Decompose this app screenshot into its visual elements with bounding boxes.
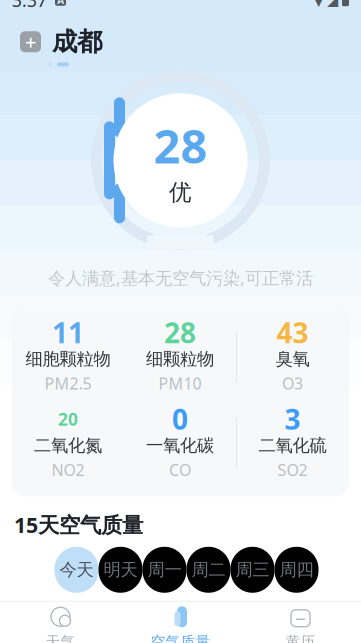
- staticText: 28: [153, 114, 207, 176]
- staticText: 成都: [52, 26, 102, 57]
- button[interactable]: 空气质量: [120, 602, 240, 643]
- staticText: +: [25, 28, 36, 55]
- button[interactable]: 黄历: [240, 602, 360, 643]
- staticText: 0: [172, 400, 188, 437]
- staticText: 43: [276, 314, 308, 351]
- staticText: PM10: [158, 373, 201, 394]
- staticText: 空气质量: [150, 633, 210, 643]
- staticText: O3: [282, 373, 303, 394]
- staticText: PM2.5: [44, 373, 91, 394]
- staticText: 黄历: [285, 633, 315, 643]
- button[interactable]: 明天: [98, 547, 142, 593]
- staticText: ▼: [313, 0, 324, 9]
- button[interactable]: 周一: [142, 547, 186, 593]
- staticText: 令人满意,基本无空气污染,可正常活: [48, 266, 313, 289]
- staticText: 臭氧: [275, 348, 309, 370]
- staticText: 天气: [45, 633, 75, 643]
- button[interactable]: 周三: [230, 547, 274, 593]
- staticText: 二氧化氮: [34, 435, 102, 456]
- staticText: 周三: [235, 559, 269, 580]
- staticText: 3:37: [12, 0, 47, 12]
- staticText: 一氧化碳: [146, 435, 214, 456]
- staticText: 今天: [59, 559, 93, 580]
- staticText: 28: [164, 314, 196, 351]
- staticText: CO: [169, 459, 191, 480]
- staticText: 细胞颗粒物: [25, 348, 110, 370]
- button[interactable]: Add city: [20, 31, 41, 52]
- staticText: NO2: [51, 459, 84, 480]
- button[interactable]: 天气: [0, 602, 120, 643]
- button[interactable]: 周四: [274, 547, 318, 593]
- staticText: 周四: [279, 559, 313, 580]
- staticText: 15天空气质量: [14, 510, 143, 539]
- staticText: 11: [52, 314, 84, 351]
- staticText: ◢: [327, 0, 338, 9]
- staticText: 20: [58, 407, 78, 430]
- button[interactable]: 今天: [54, 547, 98, 593]
- staticText: 3: [284, 400, 300, 437]
- staticText: 周二: [191, 559, 225, 580]
- staticText: 周一: [147, 559, 181, 580]
- staticText: 优: [169, 178, 192, 206]
- staticText: SO2: [277, 459, 307, 480]
- staticText: 二氧化硫: [258, 435, 326, 456]
- staticText: 明天: [103, 559, 137, 580]
- staticText: A: [57, 0, 64, 7]
- button[interactable]: 周二: [186, 547, 230, 593]
- staticText: 细颗粒物: [146, 348, 214, 370]
